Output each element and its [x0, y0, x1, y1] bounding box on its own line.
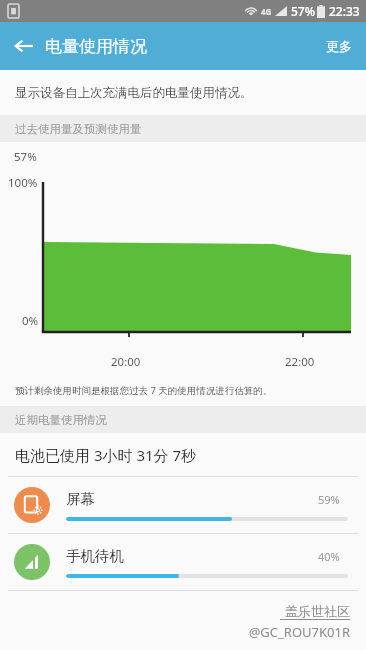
staticText: 盖乐世社区 — [285, 603, 350, 619]
staticText: 更多 — [326, 38, 352, 54]
button[interactable]: 手机待机 — [0, 534, 366, 590]
staticText: 20:00 — [111, 354, 141, 370]
staticText: 57% — [14, 149, 37, 165]
staticText: 电量使用情况 — [45, 36, 147, 57]
staticText: 屏幕 — [66, 490, 318, 508]
staticText: 40% — [318, 549, 348, 564]
staticText: 过去使用量及预测使用量 — [15, 122, 142, 136]
button[interactable]: 返回 — [0, 22, 48, 70]
button[interactable]: 屏幕 — [0, 477, 366, 533]
staticText: 4G — [261, 6, 272, 17]
staticText: 0% — [22, 313, 39, 329]
staticText: 预计剩余使用时间是根据您过去 7 天的使用情况进行估算的。 — [15, 384, 273, 397]
staticText: 100% — [8, 175, 38, 191]
staticText: 57% — [291, 3, 315, 19]
staticText: 手机待机 — [66, 547, 318, 565]
staticText: @GC_ROU7K01R — [248, 623, 350, 641]
staticText: 22:33 — [329, 3, 360, 19]
staticText: 近期电量使用情况 — [15, 413, 107, 427]
staticText: 22:00 — [285, 354, 315, 370]
staticText: 电池已使用 3小时 31分 7秒 — [15, 445, 197, 465]
staticText: 59% — [318, 492, 348, 507]
staticText: 显示设备自上次充满电后的电量使用情况。 — [15, 85, 253, 101]
button[interactable]: 更多 — [312, 22, 366, 70]
